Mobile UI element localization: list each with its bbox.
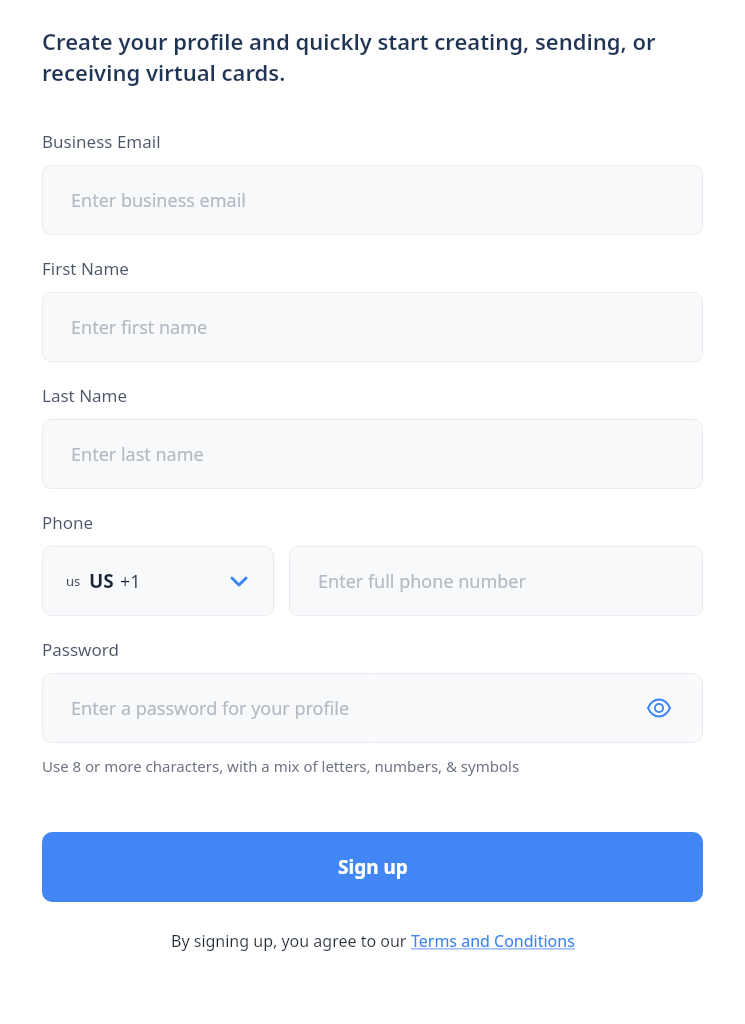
staticText: +1 bbox=[120, 569, 141, 594]
button[interactable]: Enter first name bbox=[42, 292, 703, 362]
staticText: US bbox=[89, 568, 114, 594]
button[interactable]: Enter full phone number bbox=[289, 546, 703, 616]
button[interactable]: Enter a password for your profile bbox=[42, 673, 703, 743]
staticText: Enter first name bbox=[71, 315, 674, 340]
button[interactable]: Terms and Conditions bbox=[411, 930, 575, 952]
staticText: By signing up, you agree to our bbox=[171, 930, 411, 952]
staticText: Terms and Conditions bbox=[411, 930, 575, 952]
staticText: Enter a password for your profile bbox=[71, 696, 644, 721]
staticText: Enter business email bbox=[71, 188, 674, 213]
staticText: First Name bbox=[42, 257, 129, 280]
staticText: Last Name bbox=[42, 384, 128, 407]
button[interactable]: Show password bbox=[644, 693, 674, 723]
staticText: us bbox=[66, 572, 81, 590]
button[interactable]: Enter business email bbox=[42, 165, 703, 235]
staticText: Create your profile and quickly start cr… bbox=[42, 26, 703, 88]
staticText: Sign up bbox=[338, 854, 408, 880]
staticText: Use 8 or more characters, with a mix of … bbox=[42, 756, 520, 776]
staticText: Password bbox=[42, 638, 119, 661]
button[interactable]: Enter last name bbox=[42, 419, 703, 489]
button[interactable]: us bbox=[42, 546, 274, 616]
staticText: Enter full phone number bbox=[318, 569, 674, 594]
staticText: Business Email bbox=[42, 130, 161, 153]
staticText: Enter last name bbox=[71, 442, 674, 467]
button[interactable]: Sign up bbox=[42, 832, 703, 902]
staticText: Phone bbox=[42, 511, 94, 534]
